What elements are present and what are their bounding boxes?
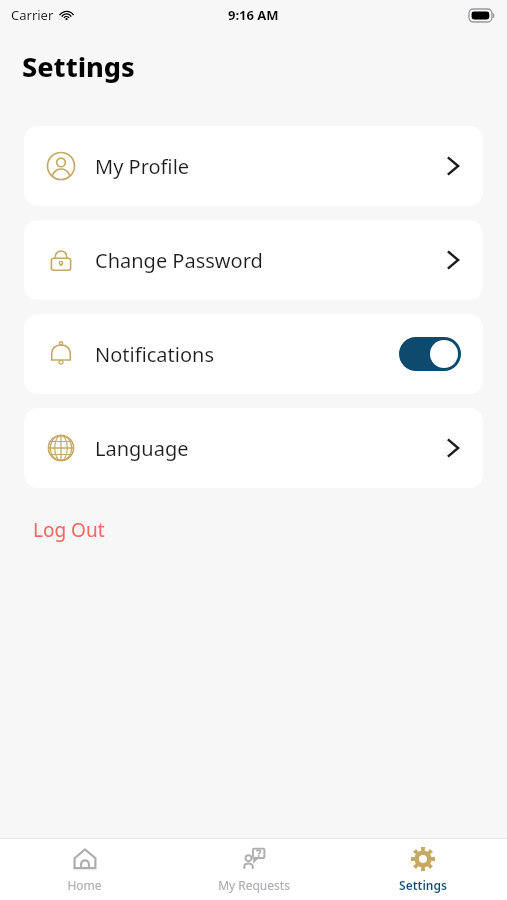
button[interactable]: Log Out [31, 514, 107, 546]
button[interactable]: Settings [338, 839, 507, 900]
button[interactable]: Home [0, 839, 169, 900]
staticText: Language [95, 435, 189, 462]
button[interactable]: Language [24, 408, 483, 488]
button[interactable]: Change Password [24, 220, 483, 300]
button[interactable]: My Requests [169, 839, 338, 900]
staticText: Home [67, 877, 102, 893]
staticText: Change Password [95, 247, 263, 274]
staticText: Log Out [33, 517, 105, 543]
button[interactable]: My Profile [24, 126, 483, 206]
staticText: My Requests [218, 877, 290, 893]
staticText: Carrier [11, 6, 54, 24]
staticText: 9:16 AM [228, 6, 279, 24]
button[interactable]: Toggle notifications [399, 337, 461, 371]
button[interactable]: Notifications [24, 314, 483, 394]
staticText: Settings [399, 877, 447, 893]
staticText: My Profile [95, 153, 190, 180]
staticText: Notifications [95, 341, 214, 368]
staticText: Settings [22, 48, 135, 85]
